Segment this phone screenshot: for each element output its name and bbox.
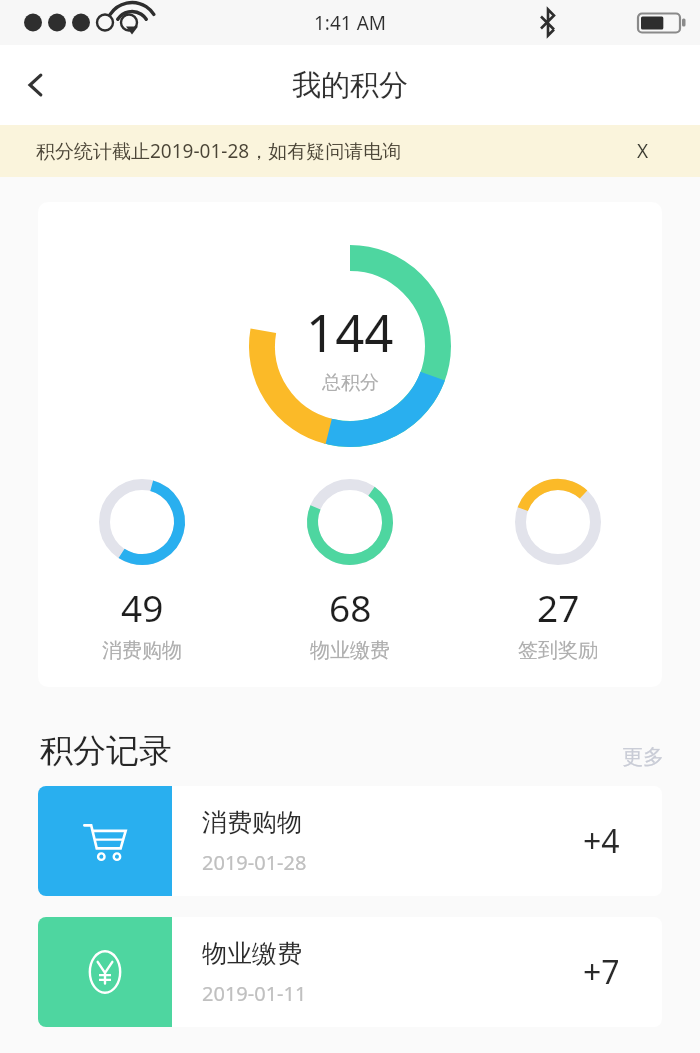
staticText: 我的积分 xyxy=(292,67,408,104)
staticText: 总积分 xyxy=(322,371,379,395)
button[interactable]: 49 xyxy=(38,479,246,663)
staticText: 物业缴费 xyxy=(310,638,390,663)
staticText: 积分记录 xyxy=(40,730,172,772)
staticText: 物业缴费 xyxy=(202,938,302,969)
button[interactable]: 物业缴费 xyxy=(38,917,662,1027)
staticText: 68 xyxy=(329,582,372,632)
staticText: 27 xyxy=(537,582,580,632)
button[interactable]: 68 xyxy=(246,479,454,663)
button[interactable]: 更多 xyxy=(622,744,664,770)
staticText: 2019-01-28 xyxy=(202,849,307,876)
button[interactable]: 消费购物 xyxy=(38,786,662,896)
staticText: 签到奖励 xyxy=(518,638,598,663)
staticText: +4 xyxy=(583,819,620,863)
staticText: 消费购物 xyxy=(202,807,302,838)
staticText: 49 xyxy=(121,582,164,632)
staticText: 更多 xyxy=(622,744,664,770)
staticText: +7 xyxy=(583,950,620,994)
staticText: 1:41 AM xyxy=(314,10,387,36)
staticText: 积分统计截止2019-01-28，如有疑问请电询 xyxy=(36,138,402,164)
button[interactable]: Close xyxy=(626,134,660,168)
button[interactable]: 144 xyxy=(38,202,662,687)
staticText: 144 xyxy=(306,297,394,366)
staticText: X xyxy=(637,138,649,164)
button[interactable]: Back xyxy=(8,57,64,113)
staticText: 消费购物 xyxy=(102,638,182,663)
button[interactable]: 27 xyxy=(454,479,662,663)
staticText: 2019-01-11 xyxy=(202,980,307,1007)
